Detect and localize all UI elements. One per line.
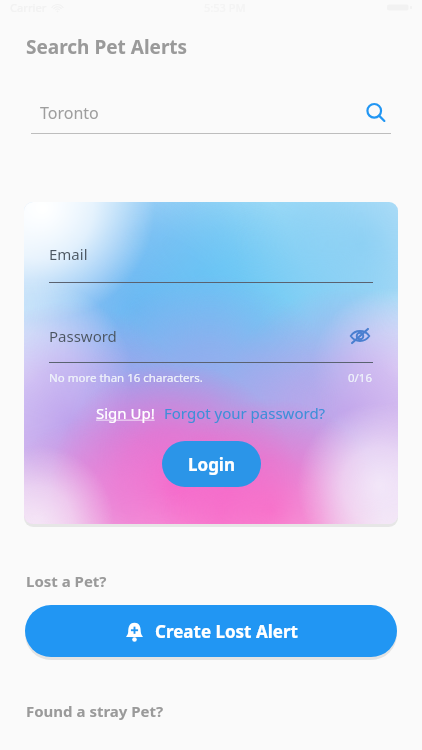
staticText: Create Lost Alert bbox=[155, 620, 298, 643]
staticText: No more than 16 characters. bbox=[49, 370, 203, 386]
staticText: 0/16 bbox=[348, 370, 373, 386]
staticText: Email bbox=[49, 244, 88, 264]
staticText: Sign Up! bbox=[96, 403, 155, 423]
staticText: Login bbox=[188, 453, 236, 476]
button[interactable]: Login bbox=[162, 441, 261, 487]
staticText: Toronto bbox=[40, 102, 99, 124]
button[interactable]: Show password bbox=[347, 323, 373, 349]
staticText: Lost a Pet? bbox=[26, 571, 107, 591]
staticText: Forgot your password? bbox=[164, 403, 326, 423]
button[interactable]: Sign Up! bbox=[96, 403, 155, 423]
button[interactable]: Create Lost Alert bbox=[25, 605, 397, 657]
button[interactable]: Search bbox=[361, 98, 391, 128]
staticText: Password bbox=[49, 326, 117, 346]
staticText: Search Pet Alerts bbox=[26, 34, 188, 60]
staticText: Found a stray Pet? bbox=[26, 701, 164, 721]
button[interactable]: Toronto bbox=[31, 98, 391, 134]
button[interactable]: Forgot your password? bbox=[164, 403, 326, 423]
